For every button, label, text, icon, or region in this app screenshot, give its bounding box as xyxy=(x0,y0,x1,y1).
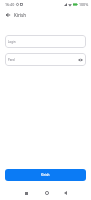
button[interactable]: Back xyxy=(2,9,13,20)
button[interactable]: Parol xyxy=(5,53,86,66)
staticText: Kirish xyxy=(41,173,50,177)
button[interactable]: Kirish xyxy=(5,169,86,181)
staticText: 16:40 xyxy=(5,2,15,7)
button[interactable]: Show password xyxy=(76,56,84,64)
button[interactable]: Login xyxy=(5,35,86,48)
button[interactable]: Recent apps xyxy=(20,187,32,199)
button[interactable]: Back xyxy=(59,187,71,199)
button[interactable]: Home xyxy=(41,187,53,199)
staticText: 100% xyxy=(79,2,89,7)
staticText: Login xyxy=(8,40,16,44)
staticText: Kirish xyxy=(14,12,26,18)
staticText: Parol xyxy=(8,58,16,62)
